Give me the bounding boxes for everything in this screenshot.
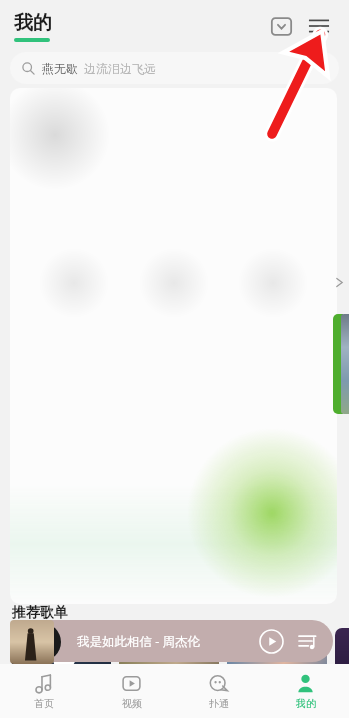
button[interactable]: 我的 <box>14 11 52 42</box>
staticText: 我是如此相信 - 周杰伦 <box>77 633 201 650</box>
button[interactable]: 扑通 <box>175 664 262 718</box>
button[interactable]: Downloads <box>265 10 297 42</box>
button[interactable]: 视频 <box>88 664 175 718</box>
staticText: 燕无歇 <box>42 61 78 76</box>
staticText: 我的 <box>14 11 52 35</box>
button[interactable] <box>12 628 111 714</box>
staticText: 视频 <box>122 697 142 710</box>
staticText: 我的 <box>296 697 316 710</box>
button[interactable]: 首页 <box>0 664 88 718</box>
button[interactable] <box>335 628 349 714</box>
staticText: 首页 <box>34 697 54 710</box>
button[interactable]: Play <box>257 627 285 655</box>
button[interactable] <box>119 628 219 714</box>
button[interactable]: 我是如此相信 - 周杰伦 <box>22 620 333 662</box>
staticText: 推荐歌单 <box>12 604 68 622</box>
button[interactable] <box>227 628 327 714</box>
button[interactable] <box>10 620 54 664</box>
button[interactable]: 我的 <box>262 664 349 718</box>
button[interactable]: Menu <box>301 8 337 44</box>
staticText: 边流泪边飞远 <box>84 61 156 76</box>
button[interactable]: 燕无歇 <box>10 52 339 84</box>
button[interactable]: Playlist <box>295 628 321 654</box>
staticText: 扑通 <box>209 697 229 710</box>
